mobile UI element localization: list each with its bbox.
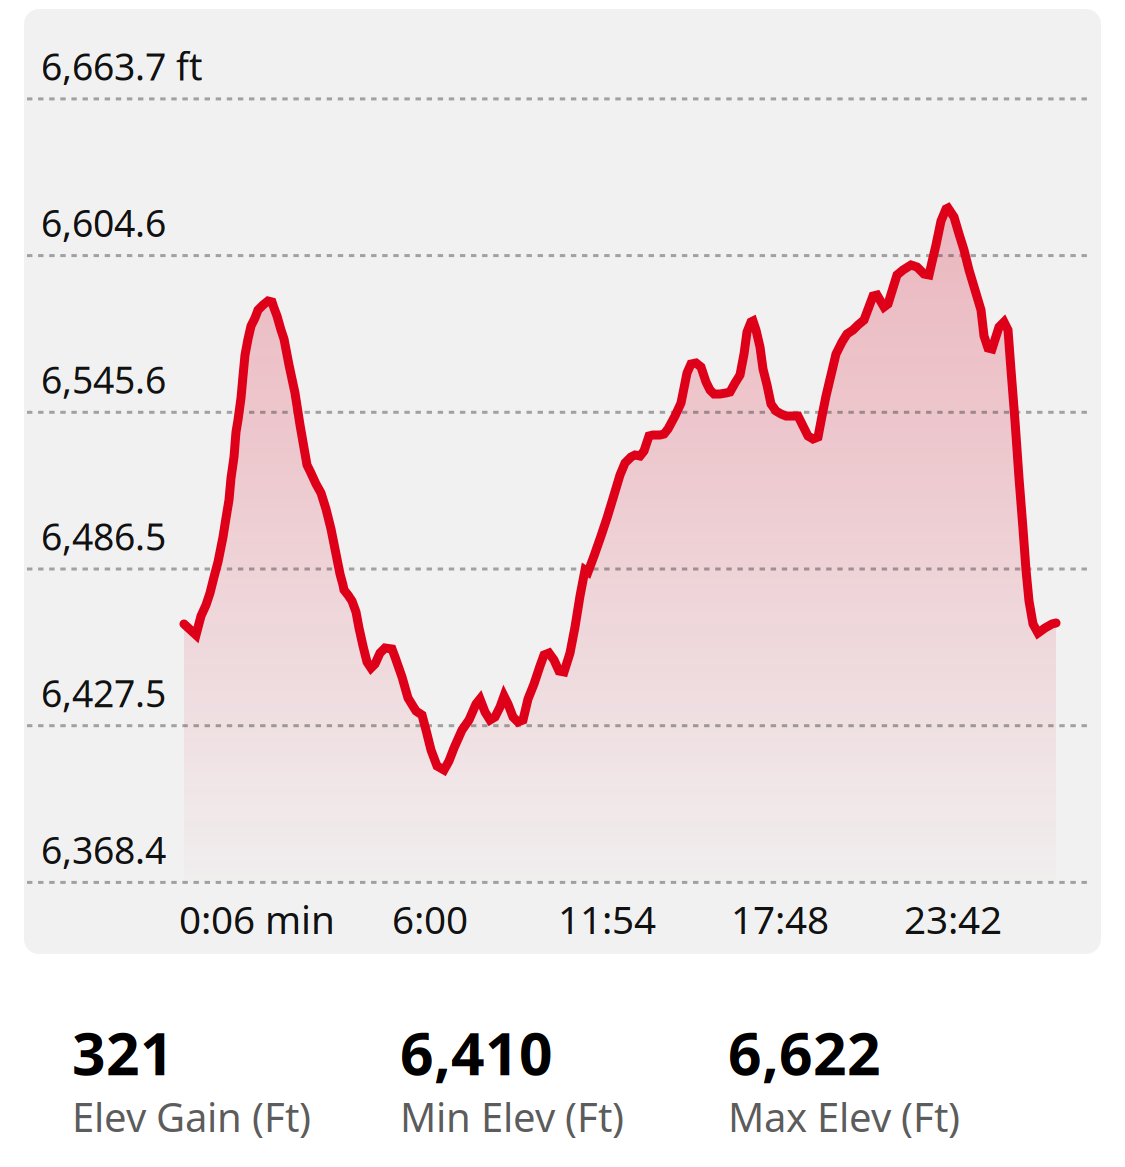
- staticText: 6:00: [392, 893, 468, 945]
- staticText: 6,622: [728, 1013, 881, 1091]
- staticText: 321: [72, 1013, 174, 1091]
- staticText: 6,368.4: [41, 825, 166, 874]
- staticText: 6,486.5: [41, 511, 166, 561]
- staticText: Min Elev (Ft): [400, 1090, 624, 1143]
- button[interactable]: 6,410: [400, 1020, 700, 1148]
- staticText: 6,545.6: [41, 354, 166, 404]
- staticText: 23:42: [904, 893, 1002, 945]
- staticText: Elev Gain (Ft): [72, 1090, 311, 1143]
- button[interactable]: 321: [72, 1020, 372, 1148]
- staticText: 6,427.5: [41, 668, 166, 717]
- staticText: 0:06 min: [179, 893, 335, 945]
- button[interactable]: Elevation chart: [0, 0, 1125, 1167]
- button[interactable]: 6,622: [728, 1020, 1028, 1148]
- staticText: Max Elev (Ft): [728, 1090, 960, 1143]
- staticText: 11:54: [558, 893, 656, 945]
- staticText: 6,604.6: [41, 198, 166, 247]
- staticText: 6,410: [400, 1013, 553, 1091]
- staticText: 6,663.7 ft: [41, 41, 202, 91]
- staticText: 17:48: [731, 893, 829, 945]
